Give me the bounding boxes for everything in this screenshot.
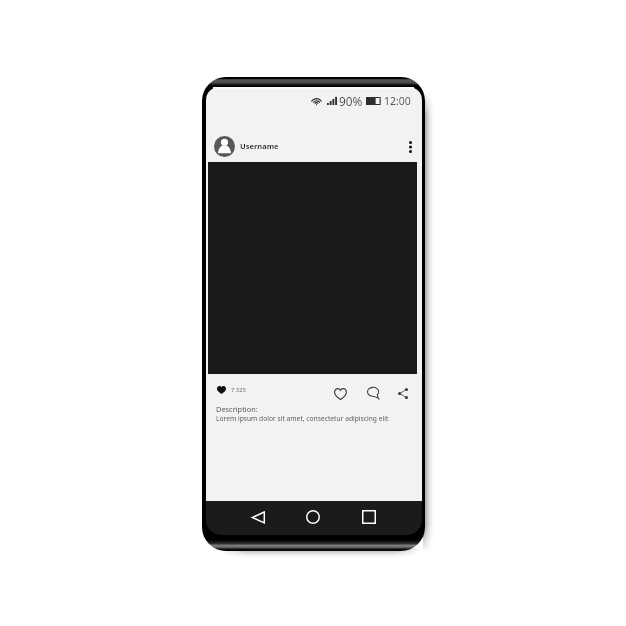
staticText: Lorem ipsum dolor sit amet, consectetur … <box>216 414 389 423</box>
staticText: 12:00 <box>384 94 411 108</box>
staticText: 90% <box>339 93 363 109</box>
button[interactable]: 7 325 <box>217 386 246 394</box>
button[interactable]: More options <box>402 139 418 155</box>
button[interactable]: Comment <box>364 384 382 402</box>
button[interactable]: Username <box>214 135 279 157</box>
button[interactable]: Share <box>394 384 412 402</box>
button[interactable]: Like <box>331 385 349 403</box>
button[interactable]: Recents <box>358 506 380 528</box>
button[interactable]: Back <box>247 506 269 528</box>
staticText: 7 325 <box>231 386 246 394</box>
staticText: Description: <box>216 404 258 414</box>
button[interactable]: Home <box>302 506 324 528</box>
staticText: Username <box>240 141 279 151</box>
